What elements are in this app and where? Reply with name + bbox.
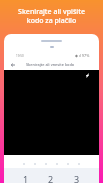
staticText: 2 bbox=[48, 173, 54, 183]
staticText: Skenirajte ali vpišite kodo za plačilo bbox=[0, 7, 103, 25]
staticText: Skenirajte ali vnesite kodo bbox=[26, 62, 75, 67]
button[interactable]: 1 bbox=[13, 168, 38, 183]
staticText: 19:50 bbox=[16, 54, 24, 58]
button[interactable]: Flash bbox=[83, 71, 92, 80]
button[interactable]: 3 bbox=[64, 168, 90, 183]
staticText: ◆ ıl 97% bbox=[75, 53, 90, 58]
staticText: 1 bbox=[23, 173, 29, 183]
button[interactable]: Back bbox=[8, 60, 17, 69]
button[interactable]: 2 bbox=[38, 168, 64, 183]
staticText: 3 bbox=[74, 173, 80, 183]
